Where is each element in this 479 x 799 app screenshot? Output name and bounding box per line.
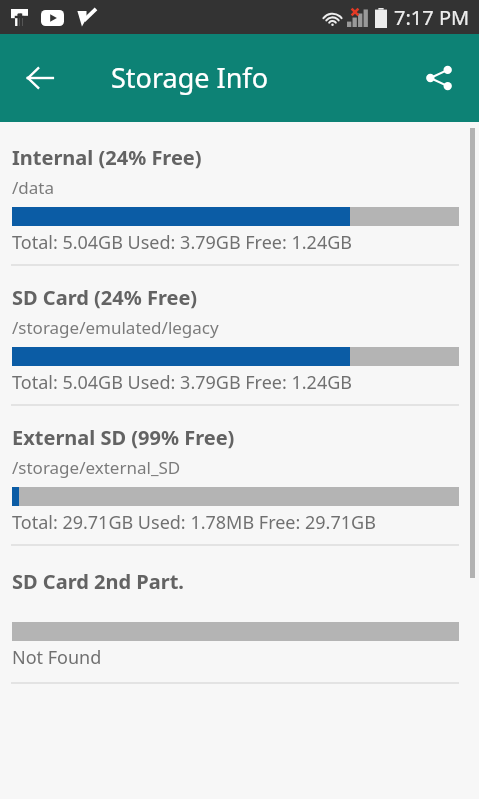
button[interactable]: External SD (99% Free) — [0, 406, 479, 544]
staticText: /storage/external_SD — [12, 456, 181, 479]
staticText: Not Found — [12, 645, 102, 670]
staticText: Total: 5.04GB Used: 3.79GB Free: 1.24GB — [12, 370, 353, 395]
button[interactable]: Internal (24% Free) — [0, 126, 479, 264]
staticText: 7:17 PM — [394, 4, 470, 31]
button[interactable]: Back — [12, 50, 68, 106]
staticText: External SD (99% Free) — [12, 424, 235, 451]
staticText: SD Card 2nd Part. — [12, 568, 184, 595]
staticText: Internal (24% Free) — [12, 144, 202, 171]
button[interactable]: Share — [411, 50, 467, 106]
button[interactable]: SD Card 2nd Part. — [0, 546, 479, 682]
staticText: Total: 5.04GB Used: 3.79GB Free: 1.24GB — [12, 230, 353, 255]
button[interactable]: SD Card (24% Free) — [0, 266, 479, 404]
staticText: SD Card (24% Free) — [12, 284, 198, 311]
staticText: /data — [12, 176, 54, 199]
staticText: /storage/emulated/legacy — [12, 316, 219, 339]
staticText: Storage Info — [111, 59, 268, 96]
staticText: Total: 29.71GB Used: 1.78MB Free: 29.71G… — [12, 510, 376, 535]
